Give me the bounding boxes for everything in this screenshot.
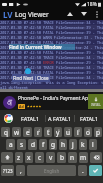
button[interactable]: x bbox=[25, 152, 33, 163]
staticText: A FATAL1 bbox=[48, 115, 72, 122]
staticText: p bbox=[96, 128, 100, 137]
staticText: 2017-03-30 07:42:58 FATAL FileGenerator:… bbox=[0, 40, 103, 45]
staticText: all different bbox=[0, 85, 28, 89]
button[interactable]: i bbox=[74, 127, 82, 137]
button[interactable]: l bbox=[89, 139, 97, 150]
staticText: g bbox=[51, 140, 55, 149]
button[interactable]: y bbox=[54, 127, 62, 137]
staticText: 1 bbox=[6, 128, 9, 133]
staticText: FATAL1 bbox=[21, 115, 40, 122]
staticText: Ad bbox=[19, 104, 24, 109]
staticText: 0 bbox=[98, 128, 101, 133]
staticText: 2017-03-30 07:42:58 FATAL FileGenerator:… bbox=[0, 50, 103, 55]
staticText: 2017-03-30 07:42:58 WARN FileGenerator:3… bbox=[0, 35, 103, 40]
button[interactable]: p bbox=[94, 127, 102, 137]
staticText: FATAL1 bbox=[80, 115, 99, 122]
button[interactable]: c bbox=[35, 152, 44, 163]
button[interactable]: A FATAL1 bbox=[46, 110, 74, 126]
staticText: ?123 bbox=[3, 168, 13, 174]
button[interactable]: Google bbox=[0, 110, 16, 126]
staticText: 8 bbox=[78, 128, 81, 133]
staticText: 6 bbox=[58, 128, 61, 133]
staticText: 2017-03-30 07:42:58 ERROR FileGenerator:… bbox=[0, 60, 103, 65]
button[interactable]: Backspace bbox=[90, 152, 102, 163]
staticText: z bbox=[17, 153, 21, 162]
staticText: c bbox=[38, 153, 42, 162]
staticText: 7 bbox=[68, 128, 71, 133]
staticText: 18% bbox=[87, 1, 97, 8]
button[interactable]: More options bbox=[91, 8, 102, 20]
staticText: 4 bbox=[38, 128, 41, 133]
button[interactable]: , bbox=[16, 165, 25, 176]
button[interactable]: ?123 bbox=[1, 165, 14, 176]
button[interactable]: Install bbox=[88, 94, 103, 109]
button[interactable]: v bbox=[46, 152, 55, 163]
staticText: q bbox=[4, 128, 8, 137]
staticText: n bbox=[70, 153, 75, 162]
button[interactable]: k bbox=[79, 139, 87, 150]
staticText: e bbox=[26, 128, 30, 137]
staticText: PhonePe - India's Payment App bbox=[18, 95, 92, 102]
staticText: l bbox=[92, 140, 94, 149]
staticText: r bbox=[37, 128, 40, 137]
staticText: j bbox=[72, 140, 74, 149]
staticText: INSTALL bbox=[91, 103, 101, 107]
staticText: s bbox=[20, 140, 24, 149]
button[interactable]: d bbox=[28, 139, 37, 150]
button[interactable]: e bbox=[23, 127, 32, 137]
staticText: t bbox=[47, 128, 50, 137]
staticText: o bbox=[86, 128, 90, 137]
button[interactable]: a bbox=[6, 139, 15, 150]
button[interactable]: m bbox=[79, 152, 88, 163]
button[interactable]: w bbox=[12, 127, 21, 137]
button[interactable]: Shift bbox=[1, 152, 13, 163]
staticText: v bbox=[49, 153, 53, 162]
staticText: Log Viewer bbox=[15, 10, 49, 19]
staticText: 9 bbox=[88, 128, 91, 133]
staticText: 2 bbox=[17, 128, 20, 133]
button[interactable]: . bbox=[78, 165, 87, 176]
staticText: m bbox=[80, 153, 87, 162]
button[interactable]: q bbox=[1, 127, 10, 137]
button[interactable]: Enter bbox=[89, 165, 102, 176]
button[interactable]: t bbox=[44, 127, 52, 137]
button[interactable]: f bbox=[39, 139, 47, 150]
button[interactable]: o bbox=[84, 127, 92, 137]
button[interactable]: FATAL1 bbox=[75, 110, 103, 126]
button[interactable]: Close bbox=[36, 74, 50, 82]
button[interactable]: b bbox=[57, 152, 66, 163]
staticText: java.lang.Exception: this is a long Exce… bbox=[0, 80, 103, 85]
staticText: 2017-03-30 07:42:58 FATAL FileGenerator:… bbox=[0, 30, 103, 35]
staticText: 2017-03-30 07:42:58 FATAL FileGenerator:… bbox=[0, 25, 103, 30]
button[interactable]: Space bbox=[27, 165, 76, 176]
staticText: k bbox=[81, 140, 85, 149]
staticText: b bbox=[60, 153, 64, 162]
staticText: w bbox=[14, 128, 20, 137]
staticText: 2017-03-30 07:42:58 TRACE FileGenerator:… bbox=[0, 65, 103, 70]
button[interactable]: FATAL1 bbox=[16, 110, 45, 126]
staticText: u bbox=[66, 128, 71, 137]
staticText: 2017-03-30 07:42:58 INFO FileGenerator:2… bbox=[0, 45, 103, 50]
staticText: 2017-03-30 07:42:58 TRACE FileGenerator:… bbox=[0, 20, 103, 25]
button[interactable]: r bbox=[34, 127, 42, 137]
button[interactable]: u bbox=[64, 127, 72, 137]
button[interactable]: Find next bbox=[77, 8, 91, 20]
button[interactable]: g bbox=[49, 139, 57, 150]
staticText: . bbox=[82, 166, 84, 175]
staticText: Find in Current Window bbox=[9, 44, 62, 50]
staticText: 2017-03-30 07:42:58 FATAL FileGenerator:… bbox=[0, 70, 103, 75]
button[interactable]: n bbox=[68, 152, 77, 163]
staticText: , bbox=[20, 166, 22, 175]
button[interactable]: Find previous bbox=[63, 8, 77, 20]
staticText: 3 bbox=[28, 128, 31, 133]
staticText: y bbox=[56, 128, 60, 137]
staticText: f bbox=[42, 140, 45, 149]
button[interactable]: Find Next bbox=[12, 74, 35, 82]
button[interactable]: h bbox=[59, 139, 67, 150]
button[interactable]: s bbox=[17, 139, 26, 150]
button[interactable]: z bbox=[15, 152, 23, 163]
staticText: d bbox=[31, 140, 35, 149]
staticText: 2017-03-30 07:42:58 TRACE FileGenerator:… bbox=[0, 55, 103, 60]
button[interactable]: j bbox=[69, 139, 77, 150]
staticText: a bbox=[9, 140, 13, 149]
